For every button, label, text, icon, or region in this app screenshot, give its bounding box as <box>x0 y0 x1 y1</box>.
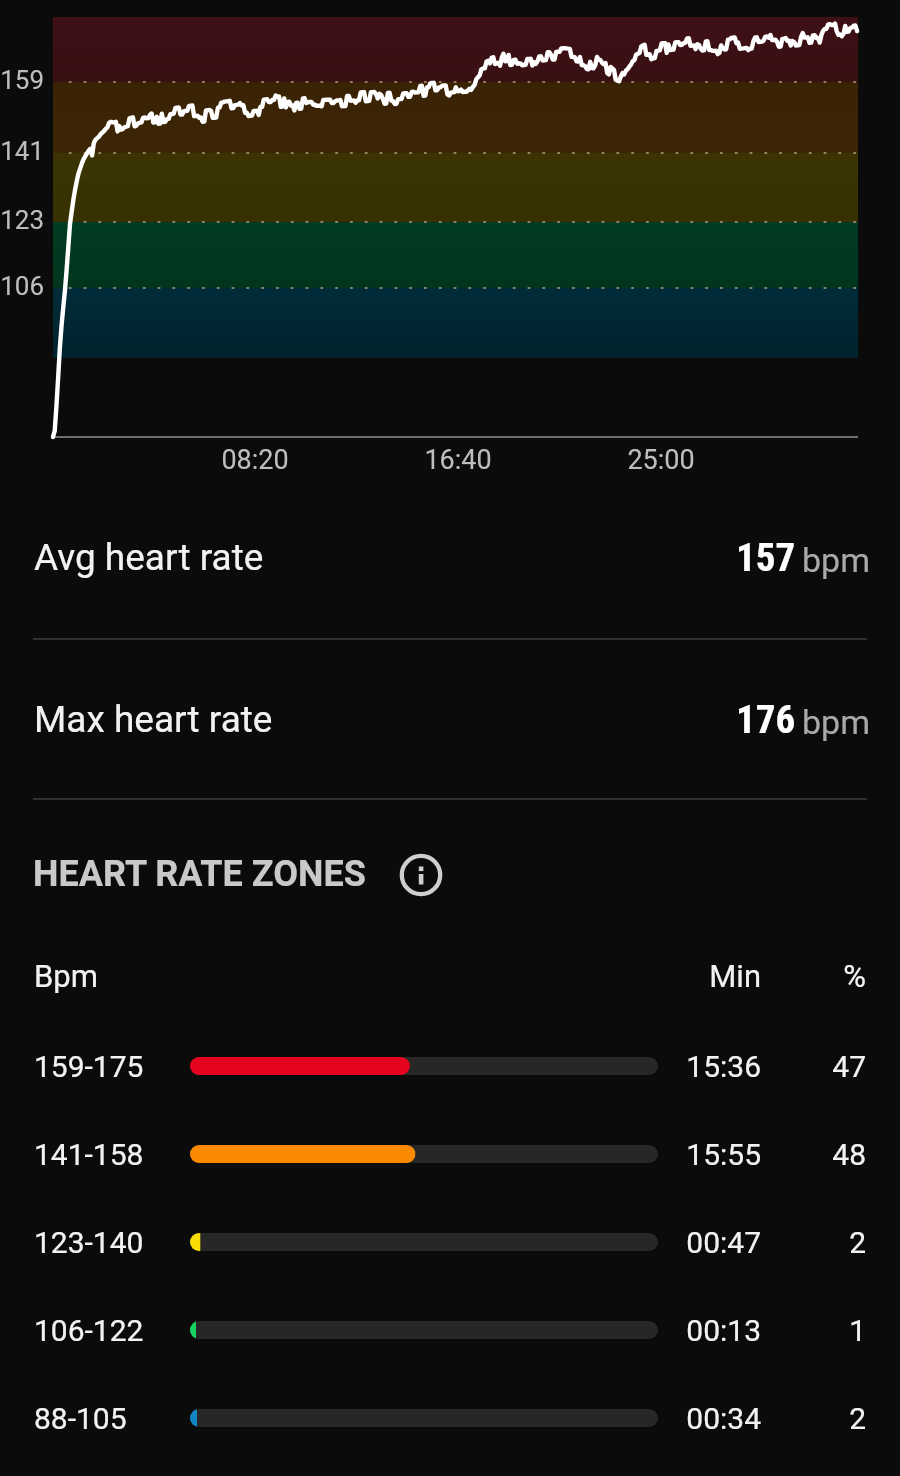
staticText: 141-158 <box>34 1137 144 1172</box>
staticText: 159 <box>0 65 44 95</box>
button[interactable]: Max heart rate <box>0 639 900 799</box>
button[interactable]: 159-175 <box>0 1022 900 1110</box>
button[interactable]: 123-140 <box>0 1198 900 1286</box>
button[interactable]: 106-122 <box>0 1286 900 1374</box>
staticText: 106-122 <box>34 1313 144 1348</box>
staticText: 123-140 <box>34 1225 144 1260</box>
staticText: 159-175 <box>34 1049 144 1084</box>
staticText: 1 <box>746 1313 866 1348</box>
button[interactable]: Info about heart rate zones <box>395 849 447 901</box>
staticText: bpm <box>802 702 870 742</box>
button[interactable]: 88-105 <box>0 1374 900 1462</box>
button[interactable]: 141-158 <box>0 1110 900 1198</box>
staticText: 157 <box>736 535 796 581</box>
staticText: 2 <box>746 1225 866 1260</box>
staticText: Max heart rate <box>34 698 273 741</box>
staticText: 16:40 <box>378 444 538 476</box>
staticText: HEART RATE ZONES <box>33 853 366 895</box>
staticText: 123 <box>0 205 44 235</box>
staticText: 00:34 <box>561 1401 761 1436</box>
staticText: bpm <box>802 540 870 580</box>
staticText: 141 <box>0 136 44 166</box>
staticText: 106 <box>0 271 44 301</box>
staticText: 00:47 <box>561 1225 761 1260</box>
staticText: % <box>746 958 866 994</box>
staticText: Min <box>561 958 761 994</box>
staticText: 08:20 <box>175 444 335 476</box>
staticText: 47 <box>746 1049 866 1084</box>
staticText: Avg heart rate <box>34 536 264 579</box>
staticText: 25:00 <box>581 444 741 476</box>
staticText: 88-105 <box>34 1401 127 1436</box>
staticText: 48 <box>746 1137 866 1172</box>
staticText: 15:55 <box>561 1137 761 1172</box>
staticText: 15:36 <box>561 1049 761 1084</box>
staticText: 00:13 <box>561 1313 761 1348</box>
staticText: 2 <box>746 1401 866 1436</box>
staticText: 176 <box>736 697 796 743</box>
button[interactable]: Avg heart rate <box>0 477 900 637</box>
staticText: Bpm <box>34 958 98 994</box>
